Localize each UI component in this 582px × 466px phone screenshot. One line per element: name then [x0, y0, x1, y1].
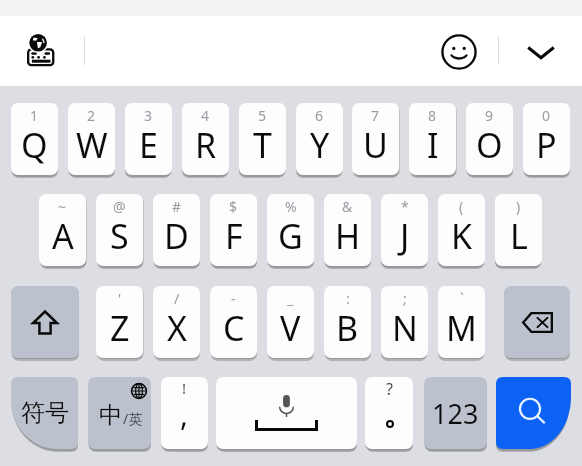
staticText: ! [182, 378, 187, 398]
button[interactable]: 6 [296, 103, 343, 175]
button[interactable]: & [324, 194, 371, 266]
button[interactable]: 8 [409, 103, 456, 175]
staticText: M [446, 305, 477, 351]
staticText: 7 [371, 106, 380, 125]
staticText: R [195, 122, 217, 168]
staticText: 2 [87, 106, 96, 125]
button[interactable]: 7 [352, 103, 399, 175]
staticText: X [167, 305, 187, 351]
staticText: ' [118, 289, 122, 308]
staticText: N [392, 305, 418, 351]
staticText: & [342, 197, 353, 216]
staticText: 123 [432, 395, 479, 432]
staticText: - [231, 289, 236, 308]
staticText: U [363, 122, 388, 168]
button[interactable]: 5 [239, 103, 286, 175]
button[interactable]: ~ [39, 194, 86, 266]
button[interactable]: 4 [182, 103, 229, 175]
staticText: /英 [123, 409, 143, 428]
staticText: Y [310, 122, 330, 168]
staticText: 中 [99, 401, 122, 430]
staticText: D [164, 213, 189, 259]
button[interactable]: Backspace [504, 286, 570, 358]
button[interactable]: % [267, 194, 314, 266]
staticText: : [346, 289, 350, 308]
staticText: ( [459, 197, 464, 216]
staticText: Q [21, 122, 48, 168]
staticText: # [172, 197, 182, 216]
button[interactable]: 3 [125, 103, 172, 175]
staticText: 5 [258, 106, 267, 125]
button[interactable]: Search [496, 377, 571, 449]
staticText: E [139, 122, 158, 168]
staticText: G [278, 213, 303, 259]
staticText: 9 [485, 106, 494, 125]
staticText: ` [460, 289, 464, 308]
button[interactable]: ; [381, 286, 428, 358]
staticText: / [174, 289, 180, 308]
staticText: T [253, 122, 272, 168]
staticText: L [510, 213, 528, 259]
staticText: F [225, 213, 243, 259]
button[interactable]: Space [216, 377, 357, 449]
button[interactable]: _ [267, 286, 314, 358]
button[interactable]: 9 [466, 103, 513, 175]
staticText: Z [110, 305, 130, 351]
staticText: K [451, 213, 473, 259]
staticText: ) [516, 197, 521, 216]
staticText: I [427, 122, 439, 168]
staticText: , [180, 394, 189, 435]
button[interactable]: / [153, 286, 200, 358]
staticText: $ [229, 197, 238, 216]
staticText: * [401, 197, 409, 216]
staticText: % [285, 197, 297, 216]
button[interactable]: # [153, 194, 200, 266]
staticText: 符号 [21, 398, 69, 428]
button[interactable]: ' [96, 286, 143, 358]
staticText: 3 [144, 106, 153, 125]
staticText: V [280, 305, 301, 351]
button[interactable]: @ [96, 194, 143, 266]
staticText: W [76, 122, 108, 168]
button[interactable]: Numbers [424, 377, 487, 449]
button[interactable]: Shift [11, 286, 79, 358]
button[interactable]: Emoji [435, 28, 483, 76]
button[interactable]: * [381, 194, 428, 266]
button[interactable]: - [210, 286, 257, 358]
button[interactable]: $ [210, 194, 257, 266]
button[interactable]: 0 [523, 103, 570, 175]
staticText: S [110, 213, 129, 259]
staticText: 8 [428, 106, 437, 125]
staticText: B [336, 305, 359, 351]
staticText: @ [113, 197, 126, 216]
button[interactable]: ) [495, 194, 542, 266]
button[interactable]: 2 [68, 103, 115, 175]
button[interactable]: Switch input language [17, 25, 65, 73]
staticText: _ [287, 289, 294, 308]
button[interactable]: Hide keyboard [517, 28, 565, 76]
staticText: ; [403, 289, 407, 308]
button[interactable]: 1 [11, 103, 58, 175]
staticText: P [536, 122, 557, 168]
button[interactable]: ` [438, 286, 485, 358]
staticText: 1 [30, 106, 39, 125]
staticText: A [52, 213, 74, 259]
staticText: 6 [315, 106, 324, 125]
button[interactable]: : [324, 286, 371, 358]
button[interactable]: ? [365, 377, 413, 449]
staticText: C [223, 305, 245, 351]
staticText: J [400, 213, 410, 259]
staticText: 0 [542, 106, 551, 125]
staticText: 4 [201, 106, 210, 125]
button[interactable]: ( [438, 194, 485, 266]
button[interactable]: ! [161, 377, 208, 449]
staticText: ~ [58, 197, 67, 216]
staticText: ? [386, 378, 393, 400]
staticText: H [335, 213, 361, 259]
staticText: O [476, 122, 503, 168]
button[interactable]: Chinese / English [88, 377, 151, 449]
button[interactable]: Symbols [11, 377, 78, 449]
